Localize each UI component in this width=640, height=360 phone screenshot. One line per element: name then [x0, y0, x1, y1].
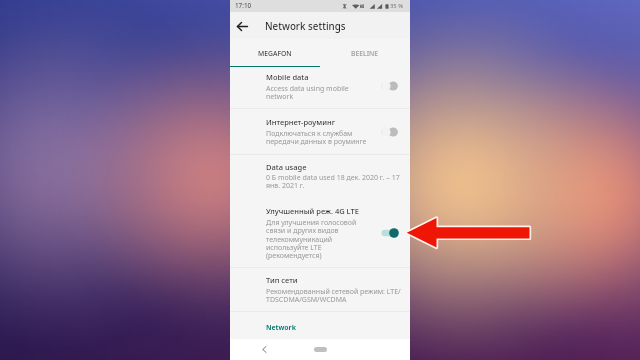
button[interactable]: Toggle off: [379, 125, 400, 139]
staticText: TDSCDMA/GSM/WCDMA: [266, 295, 347, 305]
staticText: Mobile data: [266, 72, 309, 82]
staticText: связи и других видов: [266, 226, 339, 236]
staticText: Network: [266, 323, 296, 332]
button[interactable]: Back: [234, 18, 250, 34]
staticText: MEGAFON: [258, 49, 292, 58]
staticText: Access data using mobile: [266, 84, 349, 94]
staticText: 0 Б mobile data used 18 дек. 2020 г. – 1…: [266, 173, 400, 183]
staticText: передачи данных в роуминге: [266, 137, 367, 147]
staticText: телекоммуникаций: [266, 235, 333, 245]
button[interactable]: MEGAFON: [230, 39, 320, 68]
staticText: Рекомендованный сетевой режим: LTE/: [266, 287, 401, 297]
staticText: Подключаться к службам: [266, 129, 353, 139]
staticText: (рекомендуется): [266, 251, 322, 261]
button[interactable]: Тип сети: [230, 268, 410, 311]
staticText: Тип сети: [266, 275, 298, 285]
staticText: network: [266, 92, 294, 102]
staticText: 17:10: [235, 1, 252, 10]
staticText: 35 %: [390, 2, 403, 10]
staticText: Data usage: [266, 162, 307, 172]
button[interactable]: 4G LTE enabled: [379, 226, 400, 240]
button[interactable]: Toggle off: [379, 79, 400, 93]
staticText: янв. 2021 г.: [266, 181, 305, 191]
staticText: Для улучшения голосовой: [266, 218, 357, 228]
button[interactable]: Back: [257, 342, 271, 356]
button[interactable]: Home: [305, 342, 335, 356]
button[interactable]: Data usage: [230, 155, 410, 197]
button[interactable]: Интернет-роуминг: [230, 109, 410, 154]
button[interactable]: BEELINE: [320, 39, 410, 68]
staticText: Network settings: [265, 20, 346, 33]
staticText: Интернет-роуминг: [266, 117, 336, 127]
button[interactable]: Улучшенный реж. 4G LTE: [230, 197, 410, 267]
button[interactable]: Mobile data: [230, 68, 410, 108]
staticText: используйте LTE: [266, 243, 322, 253]
staticText: Улучшенный реж. 4G LTE: [266, 206, 359, 216]
staticText: BEELINE: [351, 49, 379, 58]
button[interactable]: Network: [266, 323, 296, 332]
